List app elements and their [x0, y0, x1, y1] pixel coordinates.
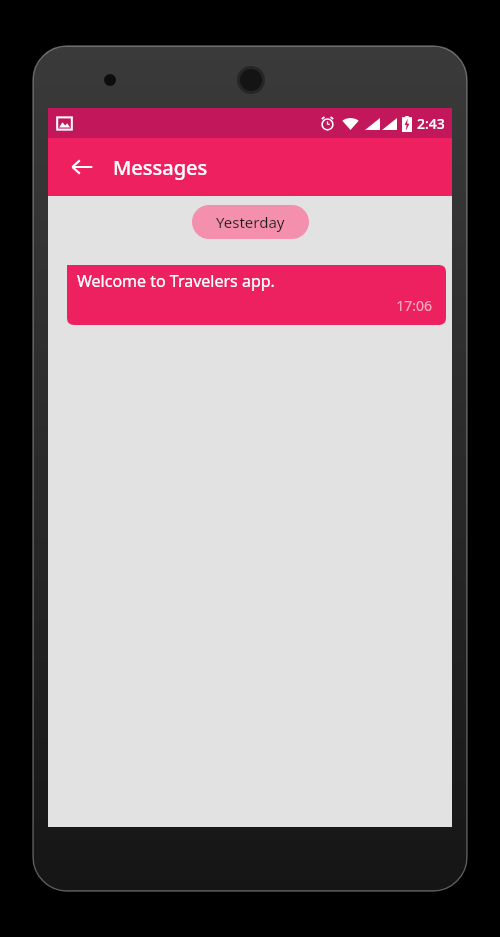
- button[interactable]: Welcome to Travelers app.: [58, 257, 446, 325]
- button[interactable]: Yesterday: [192, 205, 309, 239]
- staticText: Yesterday: [216, 212, 285, 232]
- staticText: 17:06: [77, 296, 432, 315]
- button[interactable]: Back: [62, 147, 102, 187]
- staticText: 2:43: [417, 114, 445, 133]
- staticText: Welcome to Travelers app.: [77, 270, 275, 292]
- staticText: Messages: [113, 154, 208, 181]
